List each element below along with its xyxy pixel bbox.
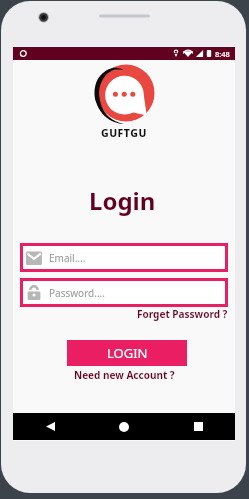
- staticText: 8:48: [215, 49, 230, 59]
- button[interactable]: Home: [87, 413, 161, 440]
- button[interactable]: Password....: [20, 278, 228, 307]
- button[interactable]: Email....: [20, 243, 228, 272]
- button[interactable]: Recents: [161, 413, 235, 440]
- button[interactable]: Back: [13, 413, 87, 440]
- staticText: Login: [89, 184, 156, 217]
- button[interactable]: LOGIN: [67, 340, 187, 366]
- button[interactable]: Forget Password ?: [137, 307, 228, 321]
- staticText: LOGIN: [107, 344, 148, 362]
- staticText: Need new Account ?: [74, 368, 175, 382]
- staticText: GUFTGU: [101, 126, 147, 140]
- staticText: Password....: [49, 286, 105, 300]
- button[interactable]: Need new Account ?: [74, 368, 175, 382]
- staticText: Email....: [49, 251, 86, 265]
- staticText: Forget Password ?: [137, 307, 228, 321]
